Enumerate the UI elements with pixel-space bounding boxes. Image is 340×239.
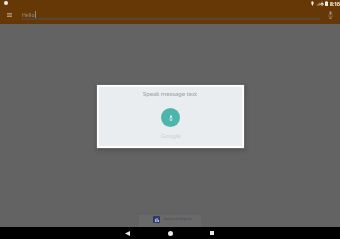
staticText: 8:16	[330, 1, 340, 8]
staticText: Hello	[22, 11, 35, 18]
staticText: Business Intelligence	[164, 217, 192, 221]
button[interactable]: Speak now	[161, 108, 180, 127]
staticText: Speak message text	[143, 90, 198, 98]
button[interactable]: Recent apps	[203, 227, 221, 239]
button[interactable]: Navigation menu	[7, 13, 12, 17]
button[interactable]: Back	[118, 227, 136, 239]
button[interactable]: Business Intelligence	[139, 215, 201, 227]
staticText: Google	[161, 132, 181, 140]
button[interactable]: Voice input	[324, 9, 336, 21]
button[interactable]: Home	[161, 227, 179, 239]
